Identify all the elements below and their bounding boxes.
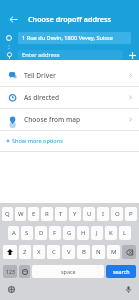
staticText: space xyxy=(61,268,76,275)
button[interactable]: G xyxy=(63,226,75,240)
button[interactable]: T xyxy=(55,207,67,221)
staticText: F xyxy=(53,229,57,237)
staticText: W xyxy=(18,210,24,218)
staticText: K xyxy=(109,229,113,237)
button[interactable]: Shift xyxy=(3,245,17,259)
button[interactable]: 1 Rue du Devin, 1800 Vevey, Suisse xyxy=(18,32,131,44)
staticText: L xyxy=(123,229,127,237)
staticText: H xyxy=(81,229,86,237)
staticText: Q xyxy=(5,210,10,218)
button[interactable]: Z xyxy=(19,245,31,259)
staticText: V xyxy=(67,248,71,256)
button[interactable]: Emoji xyxy=(19,265,30,278)
staticText: J xyxy=(96,229,98,237)
button[interactable]: search xyxy=(106,265,136,278)
button[interactable]: E xyxy=(28,207,39,221)
button[interactable]: 123 xyxy=(3,265,17,278)
staticText: R xyxy=(45,210,49,218)
staticText: G xyxy=(67,229,72,237)
button[interactable]: Enter address xyxy=(18,50,123,60)
button[interactable]: V xyxy=(62,245,75,259)
button[interactable]: N xyxy=(92,245,105,259)
button[interactable]: R xyxy=(41,207,53,221)
staticText: U xyxy=(87,210,92,218)
button[interactable]: X xyxy=(33,245,45,259)
button[interactable]: space xyxy=(32,265,104,278)
staticText: X xyxy=(37,248,41,256)
staticText: P xyxy=(129,210,133,218)
button[interactable]: Change keyboard xyxy=(6,284,16,294)
staticText: Choose dropoff address xyxy=(28,14,112,24)
button[interactable]: P xyxy=(125,207,137,221)
staticText: Choose from map xyxy=(24,115,81,124)
button[interactable]: S xyxy=(21,226,33,240)
button[interactable]: K xyxy=(105,226,117,240)
button[interactable]: As directed xyxy=(0,87,139,108)
button[interactable]: Choose from map xyxy=(0,109,139,130)
staticText: D xyxy=(39,229,44,237)
button[interactable]: F xyxy=(49,226,61,240)
button[interactable]: Tell Driver xyxy=(0,65,139,86)
button[interactable]: Back xyxy=(5,11,21,27)
button[interactable]: O xyxy=(111,207,123,221)
staticText: B xyxy=(82,248,86,256)
staticText: T xyxy=(59,210,63,218)
button[interactable]: Q xyxy=(2,207,13,221)
button[interactable]: Backspace xyxy=(122,245,136,259)
staticText: As directed xyxy=(24,93,60,102)
staticText: S xyxy=(25,229,29,237)
button[interactable]: D xyxy=(35,226,47,240)
staticText: Z xyxy=(23,248,27,256)
staticText: Y xyxy=(73,210,77,218)
staticText: I xyxy=(102,210,105,218)
staticText: C xyxy=(52,248,56,256)
button[interactable]: B xyxy=(77,245,90,259)
button[interactable]: I xyxy=(97,207,109,221)
staticText: 1 Rue du Devin, 1800 Vevey, Suisse xyxy=(22,34,113,42)
staticText: Enter address xyxy=(22,51,60,59)
staticText: E xyxy=(32,210,36,218)
staticText: Tell Driver xyxy=(24,71,56,80)
button[interactable]: A xyxy=(8,226,19,240)
button[interactable]: Show more options xyxy=(0,135,139,147)
staticText: O xyxy=(115,210,120,218)
button[interactable]: H xyxy=(77,226,89,240)
button[interactable]: L xyxy=(119,226,131,240)
staticText: search xyxy=(113,268,130,275)
staticText: A xyxy=(12,229,16,237)
button[interactable]: W xyxy=(15,207,26,221)
button[interactable]: Voice input xyxy=(123,284,133,294)
staticText: M xyxy=(111,248,117,256)
button[interactable]: C xyxy=(47,245,60,259)
button[interactable]: M xyxy=(107,245,120,259)
staticText: 123 xyxy=(6,268,15,275)
button[interactable]: U xyxy=(83,207,95,221)
button[interactable]: J xyxy=(91,226,103,240)
button[interactable]: Add stop xyxy=(125,50,139,60)
button[interactable]: Y xyxy=(69,207,81,221)
staticText: Show more options xyxy=(12,137,63,145)
staticText: N xyxy=(96,248,101,256)
